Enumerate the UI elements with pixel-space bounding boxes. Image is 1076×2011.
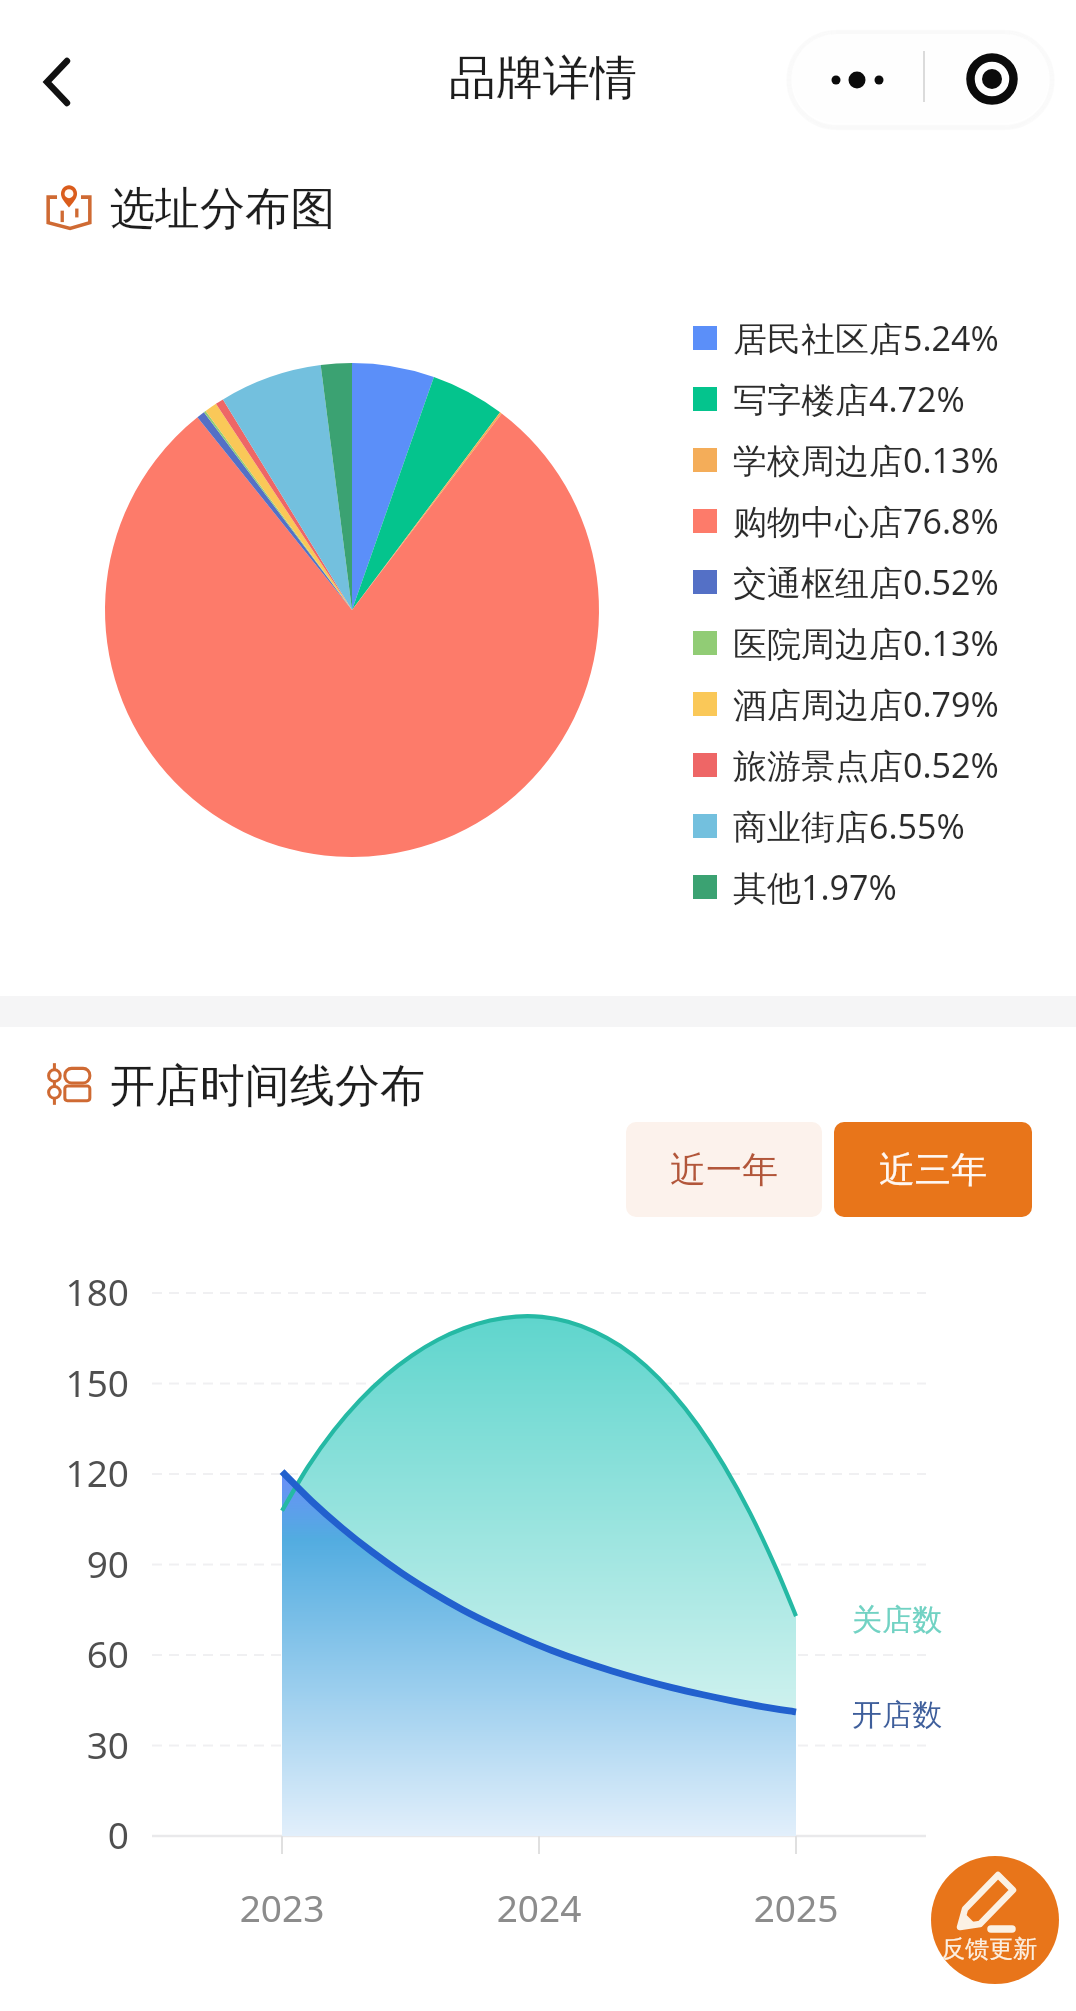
button[interactable]: 选址分布图 — [44, 182, 335, 232]
button[interactable]: 居民社区店5.24% — [693, 307, 999, 368]
button[interactable]: 酒店周边店0.79% — [693, 673, 999, 734]
staticText: 2024 — [469, 1882, 609, 1932]
staticText: 90 — [0, 1538, 129, 1588]
button[interactable]: 反馈更新 — [931, 1856, 1059, 1984]
staticText: 旅游景点店0.52% — [733, 742, 999, 788]
staticText: 交通枢纽店0.52% — [733, 559, 999, 605]
button[interactable]: 其他1.97% — [693, 856, 897, 917]
button[interactable]: 医院周边店0.13% — [693, 612, 999, 673]
button[interactable]: 购物中心店76.8% — [693, 490, 999, 551]
staticText: 30 — [0, 1719, 129, 1769]
button[interactable]: 旅游景点店0.52% — [693, 734, 999, 795]
button[interactable]: 商业街店6.55% — [693, 795, 965, 856]
button[interactable]: 交通枢纽店0.52% — [693, 551, 999, 612]
staticText: 选址分布图 — [110, 181, 335, 231]
button[interactable]: 开店时间线分布 — [44, 1059, 425, 1109]
staticText: 其他1.97% — [733, 864, 897, 910]
staticText: 医院周边店0.13% — [733, 620, 999, 666]
button[interactable]: 写字楼店4.72% — [693, 368, 965, 429]
staticText: 150 — [0, 1357, 129, 1407]
staticText: 关店数 — [852, 1601, 942, 1639]
staticText: 0 — [0, 1809, 129, 1859]
staticText: 商业街店6.55% — [733, 803, 965, 849]
button[interactable]: 近一年 — [626, 1122, 822, 1217]
staticText: 60 — [0, 1628, 129, 1678]
staticText: 2025 — [726, 1882, 866, 1932]
staticText: 近三年 — [879, 1147, 987, 1192]
button[interactable]: 学校周边店0.13% — [693, 429, 999, 490]
staticText: 购物中心店76.8% — [733, 498, 999, 544]
staticText: 反馈更新 — [941, 1934, 1037, 1964]
button[interactable]: Back — [32, 48, 94, 110]
staticText: 写字楼店4.72% — [733, 376, 965, 422]
staticText: 2023 — [212, 1882, 352, 1932]
staticText: 近一年 — [670, 1147, 778, 1192]
staticText: 180 — [0, 1266, 129, 1316]
staticText: 120 — [0, 1447, 129, 1497]
staticText: 品牌详情 — [449, 49, 637, 108]
staticText: 开店时间线分布 — [110, 1058, 425, 1108]
button[interactable]: More options — [792, 34, 923, 123]
staticText: 居民社区店5.24% — [733, 315, 999, 361]
button[interactable]: Mini program menu — [925, 34, 1049, 123]
staticText: 酒店周边店0.79% — [733, 681, 999, 727]
staticText: 学校周边店0.13% — [733, 437, 999, 483]
button[interactable]: 近三年 — [834, 1122, 1032, 1217]
staticText: 开店数 — [852, 1696, 942, 1734]
